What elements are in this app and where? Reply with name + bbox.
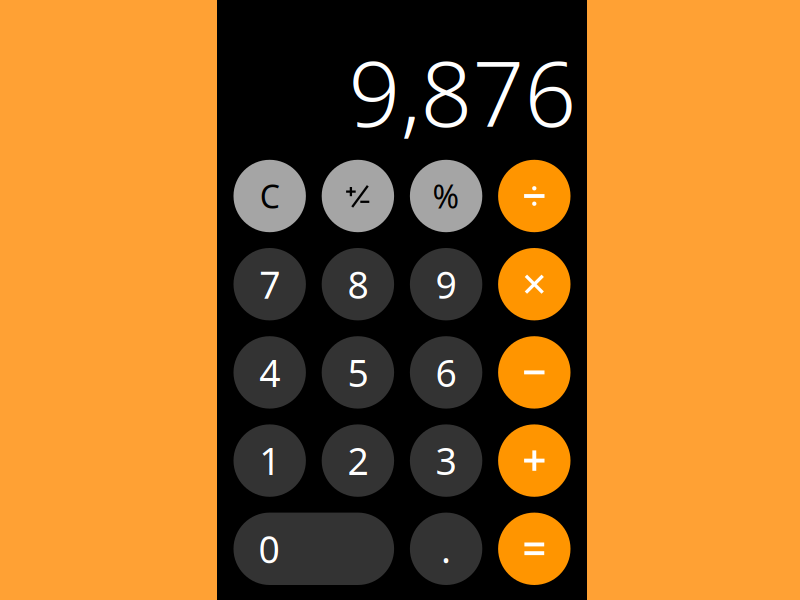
button[interactable]: Minus [498, 336, 570, 409]
staticText: 0 [258, 524, 279, 574]
button[interactable]: C [233, 160, 306, 232]
staticText: % [433, 175, 460, 217]
staticText: 6 [436, 348, 457, 397]
button[interactable]: 8 [322, 248, 394, 320]
button[interactable]: Plus or minus [322, 160, 394, 232]
button[interactable]: 0 [233, 513, 394, 585]
staticText: 5 [347, 348, 368, 397]
staticText: 9,876 [348, 31, 576, 152]
button[interactable]: 1 [233, 424, 306, 497]
button[interactable]: % [410, 160, 482, 232]
staticText: . [441, 524, 451, 574]
button[interactable]: 2 [322, 424, 394, 497]
button[interactable]: Divide [498, 160, 570, 232]
staticText: 9 [436, 259, 457, 309]
staticText: 1 [259, 436, 280, 485]
button[interactable]: 5 [322, 336, 394, 409]
button[interactable]: 7 [233, 248, 306, 320]
button[interactable]: Multiply [498, 248, 570, 320]
staticText: 8 [347, 259, 368, 309]
button[interactable]: 9 [410, 248, 482, 320]
staticText: 2 [347, 436, 368, 485]
button[interactable]: Plus [498, 424, 570, 497]
staticText: C [260, 175, 280, 217]
button[interactable]: 3 [410, 424, 482, 497]
staticText: 4 [259, 348, 280, 397]
button[interactable]: 6 [410, 336, 482, 409]
button[interactable]: Equals [498, 513, 570, 585]
staticText: 3 [436, 436, 457, 485]
button[interactable]: 4 [233, 336, 306, 409]
staticText: 7 [259, 259, 280, 309]
button[interactable]: . [410, 513, 482, 585]
